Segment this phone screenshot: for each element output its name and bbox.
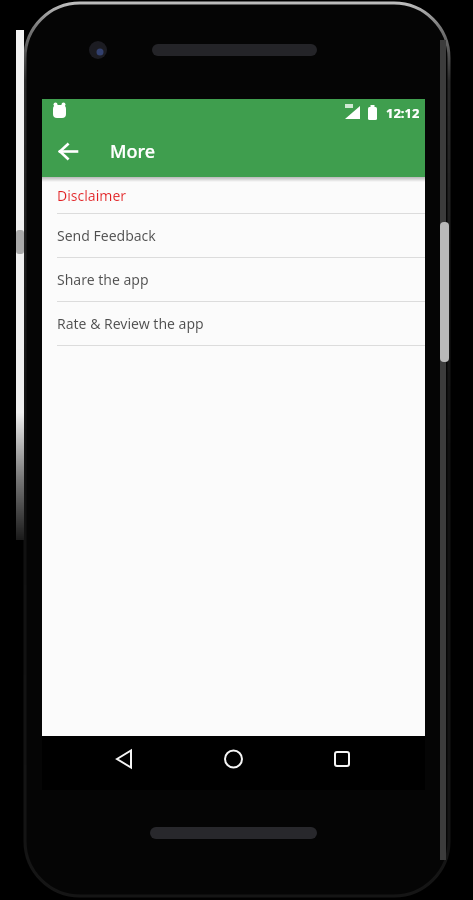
staticText: Rate & Review the app — [57, 314, 204, 333]
button[interactable] — [42, 125, 94, 177]
staticText: Share the app — [57, 270, 149, 289]
staticText: More — [110, 139, 156, 164]
button[interactable]: Send Feedback — [42, 214, 425, 257]
staticText: 12:12 — [386, 104, 420, 122]
button[interactable]: Disclaimer — [42, 177, 425, 213]
button[interactable]: Rate & Review the app — [42, 302, 425, 345]
staticText: Send Feedback — [57, 226, 156, 245]
button[interactable]: Share the app — [42, 258, 425, 301]
staticText: Disclaimer — [57, 186, 127, 205]
